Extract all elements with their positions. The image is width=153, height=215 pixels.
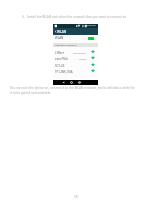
staticText: 4:43 PM (87, 24, 96, 27)
staticText: You can turn the device on, connect it t… (10, 86, 135, 90)
button[interactable]: Recent apps (78, 81, 81, 84)
button[interactable]: Home (70, 81, 73, 84)
staticText: Connected (73, 51, 86, 54)
staticText: WLAN (57, 30, 67, 34)
staticText: Saved (79, 57, 86, 60)
staticText: L'Ware (55, 51, 65, 55)
button[interactable]: TP-LINK_D8A (53, 68, 98, 74)
staticText: eeeeTRxk (55, 57, 68, 61)
button[interactable]: WLAN (53, 35, 98, 43)
staticText: TP-LINK_D8A (55, 70, 73, 74)
staticText: Available networks (55, 43, 77, 46)
button[interactable]: Back (62, 81, 65, 84)
staticText: SCS-LB (55, 64, 65, 68)
button[interactable]: L'Ware (53, 49, 98, 55)
button[interactable]: eeeeTRxk (53, 55, 98, 61)
button[interactable]: Back (53, 28, 98, 36)
staticText: WLAN (55, 36, 64, 40)
staticText: 3. Install the WLAN and select the netwo… (22, 15, 126, 19)
button[interactable]: Back (54, 30, 57, 33)
button[interactable]: SCS-LB (53, 62, 98, 68)
staticText: 18 (74, 195, 78, 199)
staticText: it to be paired and available. (10, 91, 52, 95)
